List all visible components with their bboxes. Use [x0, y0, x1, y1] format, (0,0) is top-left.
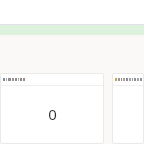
button[interactable]: Statistic card, value 0: [0, 73, 104, 144]
staticText: 0: [48, 104, 57, 124]
button[interactable]: Secondary statistic card: [112, 73, 144, 144]
